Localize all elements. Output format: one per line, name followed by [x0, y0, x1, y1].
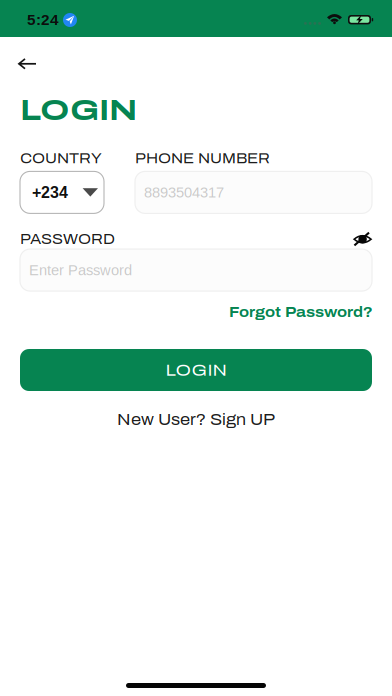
staticText: Enter Password — [29, 262, 132, 278]
button[interactable]: Forgot Password? — [229, 304, 373, 320]
staticText: PHONE NUMBER — [135, 151, 270, 166]
button[interactable]: +234 — [20, 171, 104, 213]
staticText: COUNTRY — [20, 151, 102, 166]
button[interactable]: Show password — [353, 232, 372, 246]
button[interactable]: Back — [0, 37, 53, 82]
staticText: LOGIN — [165, 361, 226, 379]
staticText: PASSWORD — [20, 231, 115, 247]
staticText: +234 — [32, 183, 68, 201]
button[interactable]: LOGIN — [20, 349, 372, 391]
staticText: 5:24 — [27, 11, 59, 28]
staticText: 8893504317 — [144, 184, 224, 201]
staticText: LOGIN — [20, 95, 137, 126]
button[interactable]: New User? Sign UP — [117, 411, 275, 428]
staticText: New User? Sign UP — [117, 411, 275, 428]
staticText: Forgot Password? — [229, 304, 373, 320]
